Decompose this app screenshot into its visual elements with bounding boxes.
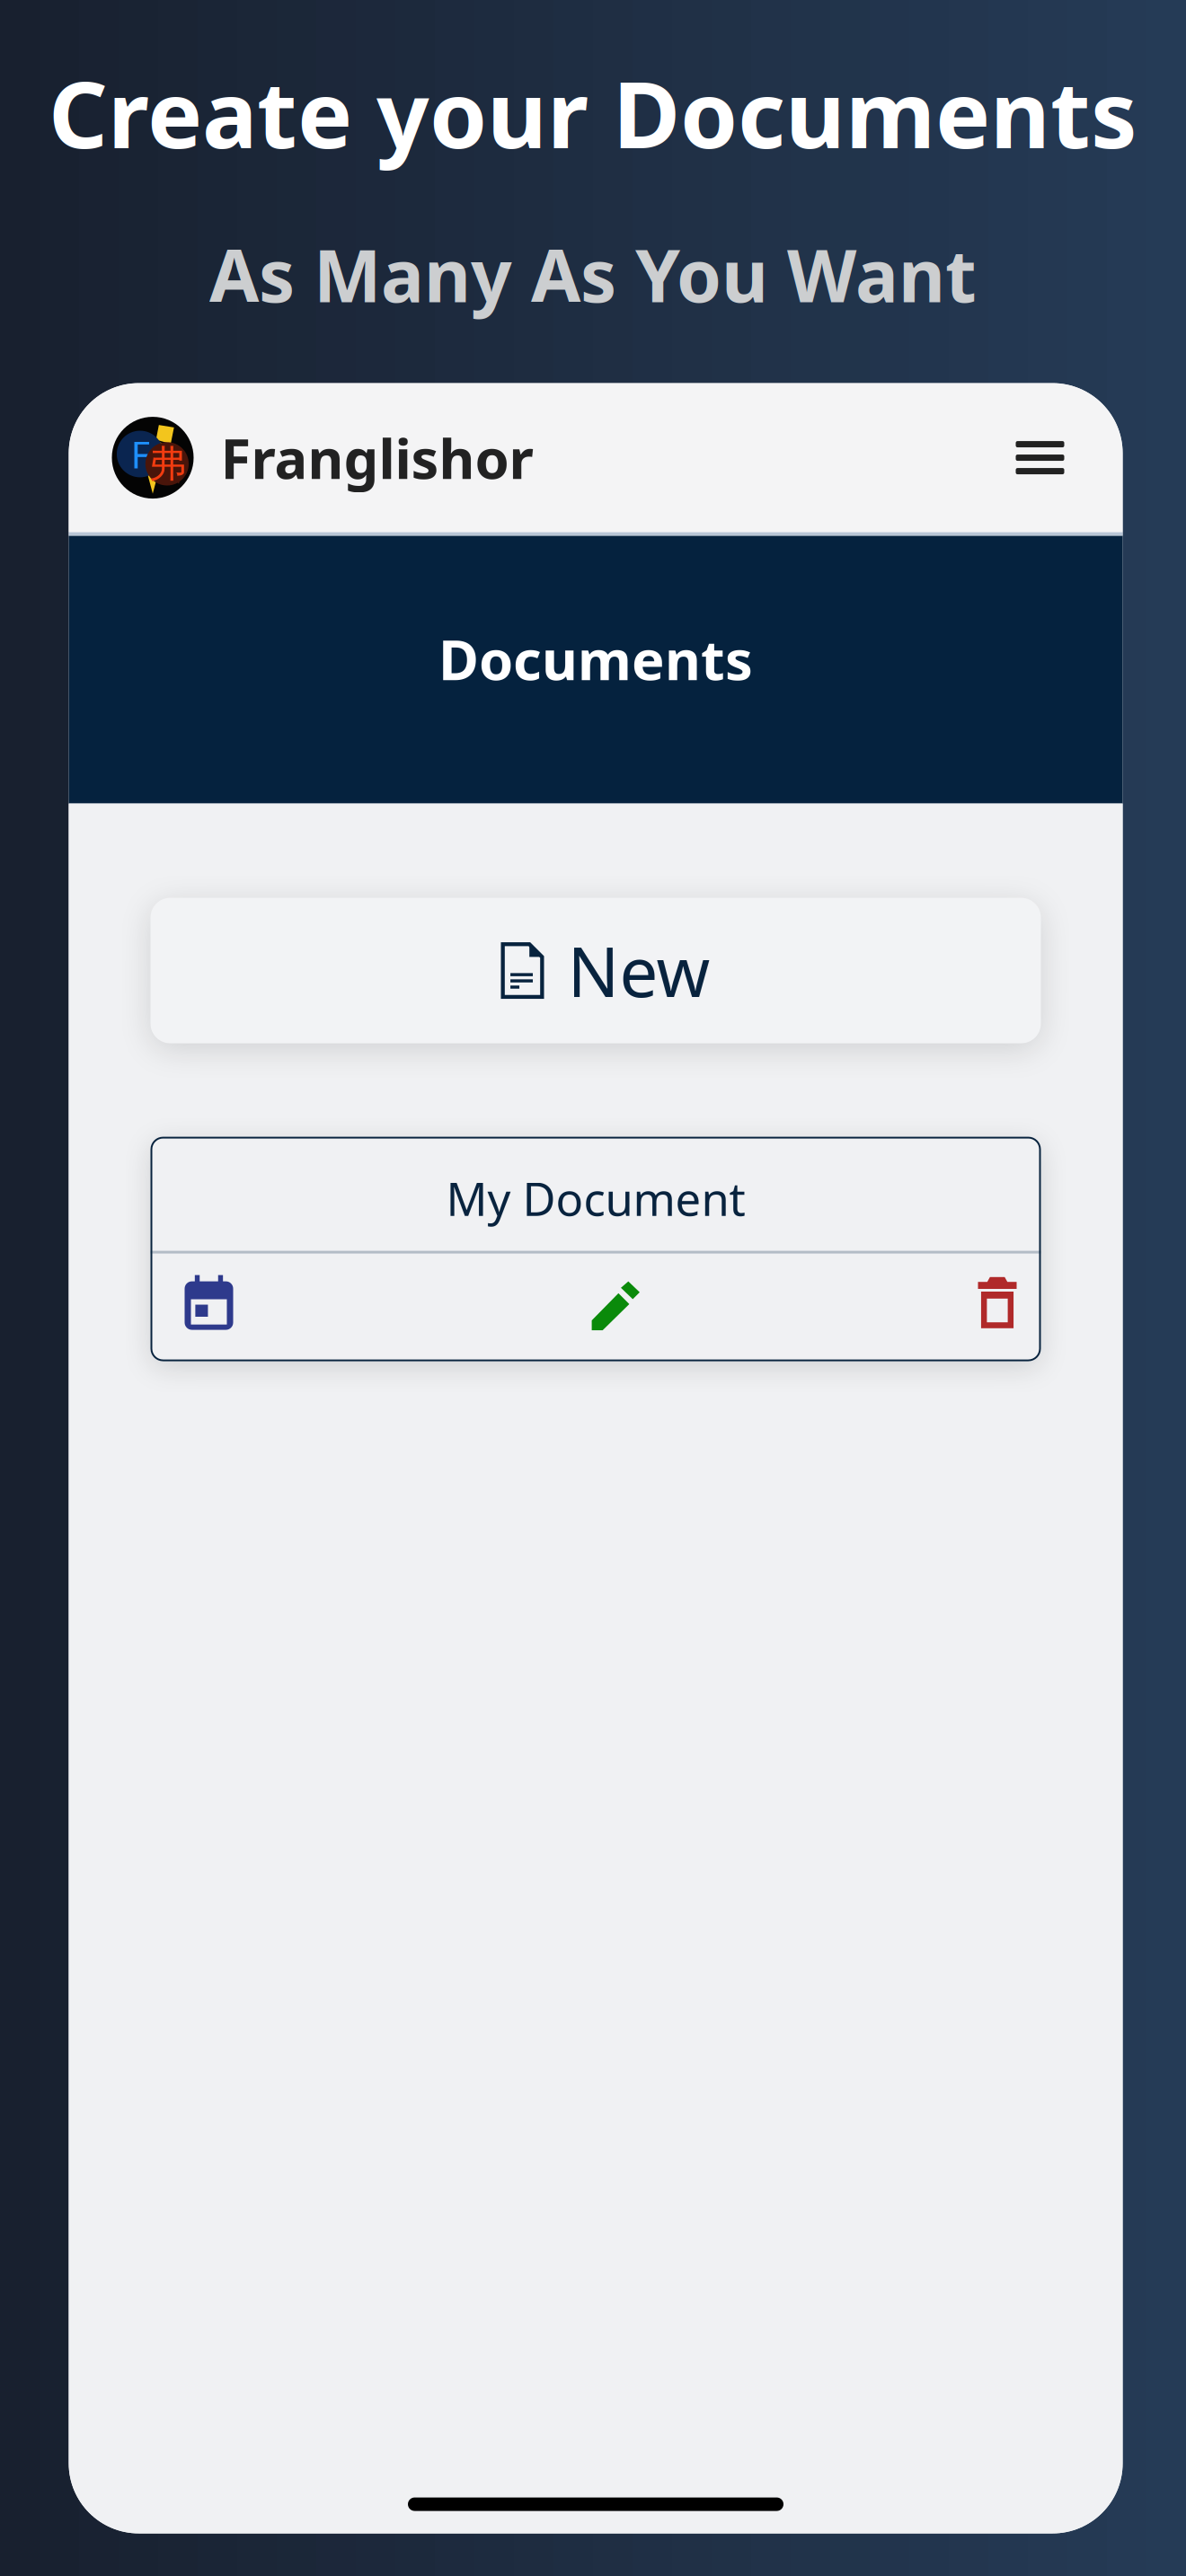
staticText: Franglishor	[221, 421, 533, 494]
button[interactable]: My Document	[150, 1137, 1041, 1251]
button[interactable]: Menu	[1007, 429, 1073, 487]
staticText: 弗	[149, 441, 185, 487]
button[interactable]: Schedule	[150, 1255, 249, 1359]
button[interactable]: Edit	[565, 1255, 646, 1360]
staticText: My Document	[446, 1168, 745, 1228]
staticText: Documents	[438, 622, 753, 695]
staticText: As Many As You Want	[209, 227, 977, 322]
staticText: F	[131, 429, 150, 479]
staticText: New	[567, 925, 710, 1016]
button[interactable]: New	[150, 898, 1041, 1043]
button[interactable]: Delete	[962, 1255, 1041, 1359]
staticText: Create your Documents	[49, 51, 1137, 174]
